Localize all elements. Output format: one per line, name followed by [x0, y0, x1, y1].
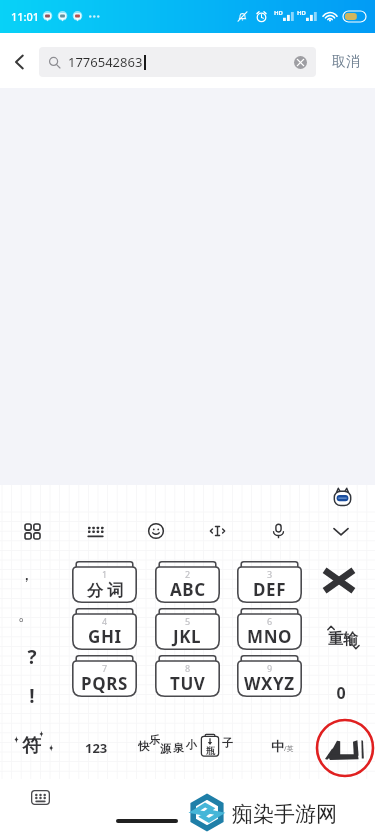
button[interactable]: 符: [4, 726, 60, 770]
staticText: 123: [85, 739, 108, 757]
staticText: 1776542863: [68, 53, 143, 71]
staticText: MNO: [247, 625, 293, 648]
button[interactable]: ?: [5, 637, 59, 677]
staticText: ，: [18, 564, 35, 585]
staticText: WXYZ: [244, 672, 295, 695]
staticText: 源: [160, 742, 171, 756]
button[interactable]: 重输: [316, 617, 370, 657]
staticText: 2: [185, 568, 191, 580]
staticText: 快: [138, 739, 149, 753]
staticText: JKL: [173, 625, 202, 648]
button[interactable]: 0: [314, 673, 368, 713]
staticText: HD: [297, 9, 306, 17]
staticText: 。: [18, 604, 35, 625]
staticText: TUV: [170, 672, 206, 695]
button[interactable]: Space: [130, 725, 242, 771]
staticText: 6: [267, 615, 273, 627]
staticText: PQRS: [81, 672, 128, 695]
staticText: 7: [102, 662, 108, 674]
button[interactable]: 7: [72, 655, 137, 697]
button[interactable]: 1: [72, 561, 137, 603]
button[interactable]: Switch keyboard: [31, 790, 50, 805]
staticText: 11:01: [11, 9, 40, 24]
button[interactable]: ，: [0, 554, 53, 594]
staticText: 重输: [328, 630, 358, 649]
button[interactable]: 123: [70, 730, 122, 766]
button[interactable]: 中: [258, 728, 306, 764]
button[interactable]: 8: [155, 655, 220, 697]
button[interactable]: 3: [237, 561, 302, 603]
staticText: 乐: [149, 733, 160, 747]
button[interactable]: Enter: [318, 726, 372, 770]
staticText: ABC: [170, 578, 206, 601]
button[interactable]: Assistant: [332, 487, 353, 508]
staticText: 3: [267, 568, 273, 580]
button[interactable]: Clear text: [290, 52, 310, 72]
staticText: 瓶: [206, 745, 215, 756]
button[interactable]: 6: [237, 608, 302, 650]
staticText: 分词: [85, 581, 125, 601]
staticText: ?: [27, 644, 37, 670]
staticText: 0: [336, 682, 346, 704]
button[interactable]: 5: [155, 608, 220, 650]
staticText: GHI: [88, 625, 122, 648]
staticText: 泉: [173, 741, 184, 755]
staticText: DEF: [253, 578, 287, 601]
button[interactable]: Voice input: [259, 512, 297, 550]
button[interactable]: Collapse keyboard: [322, 512, 360, 550]
button[interactable]: 9: [237, 655, 302, 697]
staticText: /英: [284, 744, 294, 754]
staticText: 取消: [332, 53, 360, 71]
staticText: HD: [274, 9, 283, 17]
staticText: 8: [185, 662, 191, 674]
staticText: !: [29, 683, 35, 709]
staticText: 痴染手游网: [232, 801, 337, 827]
button[interactable]: Emoji: [137, 512, 175, 550]
button[interactable]: 。: [0, 594, 53, 634]
staticText: 中: [271, 738, 284, 754]
staticText: 子: [222, 736, 233, 750]
button[interactable]: 取消: [316, 36, 375, 88]
staticText: 4: [102, 615, 108, 627]
staticText: 1: [102, 568, 108, 580]
button[interactable]: Keyboard layout: [76, 512, 114, 550]
button[interactable]: 4: [72, 608, 137, 650]
button[interactable]: Back: [0, 36, 39, 88]
button[interactable]: 1776542863: [39, 47, 316, 77]
button[interactable]: Delete: [312, 560, 366, 600]
button[interactable]: Move cursor: [198, 512, 236, 550]
staticText: 9: [267, 662, 273, 674]
staticText: 5: [185, 615, 191, 627]
button[interactable]: 2: [155, 561, 220, 603]
button[interactable]: !: [5, 676, 59, 716]
staticText: 符: [22, 734, 41, 758]
button[interactable]: Apps: [13, 512, 51, 550]
staticText: 小: [186, 738, 197, 752]
